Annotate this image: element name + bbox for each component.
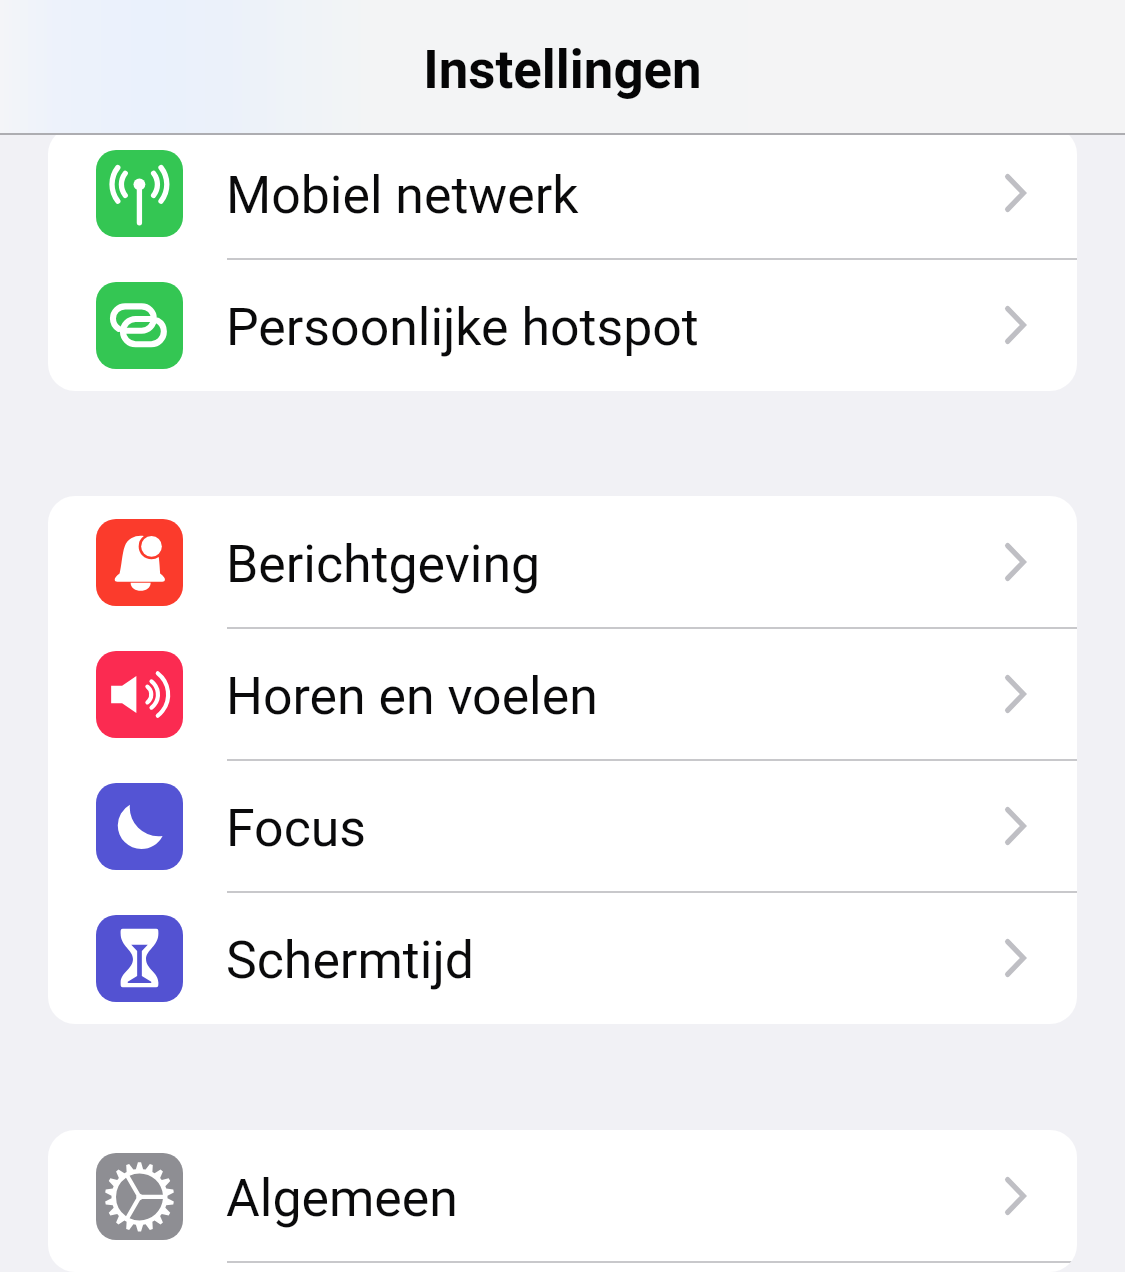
other: Open [1005, 675, 1026, 713]
button[interactable]: Schermtijd [48, 892, 1077, 1024]
other: Open [1005, 174, 1026, 212]
staticText: Algemeen [226, 1168, 458, 1229]
staticText: Mobiel netwerk [226, 165, 579, 226]
button[interactable]: Persoonlijke hotspot [48, 259, 1077, 391]
staticText: Instellingen [423, 39, 702, 101]
staticText: Persoonlijke hotspot [226, 297, 699, 358]
button[interactable]: Berichtgeving [48, 496, 1077, 628]
other: Open [1005, 807, 1026, 845]
button[interactable]: Algemeen [48, 1130, 1077, 1262]
other: Open [1005, 543, 1026, 581]
button[interactable]: Mobiel netwerk [48, 127, 1077, 259]
other: Open [1005, 306, 1026, 344]
staticText: Berichtgeving [226, 534, 541, 595]
other: Open [1005, 1177, 1026, 1215]
other: Open [1005, 939, 1026, 977]
button[interactable]: Focus [48, 760, 1077, 892]
staticText: Horen en voelen [226, 666, 598, 727]
staticText: Focus [226, 798, 367, 859]
staticText: Schermtijd [226, 930, 474, 991]
button[interactable]: Horen en voelen [48, 628, 1077, 760]
